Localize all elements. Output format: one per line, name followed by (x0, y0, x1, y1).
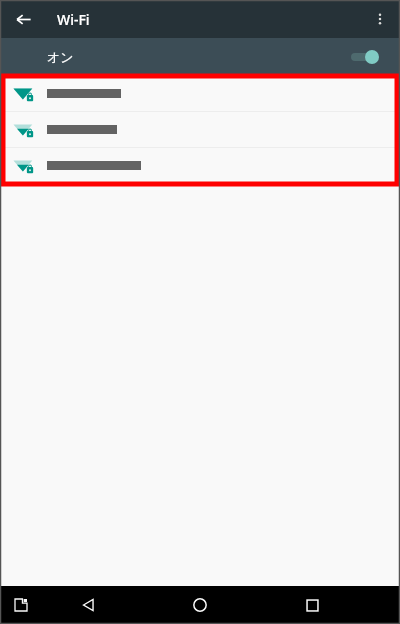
button[interactable]: Recent apps (288, 586, 336, 624)
button[interactable] (0, 148, 400, 183)
button[interactable]: Switch input method (8, 592, 34, 618)
button[interactable]: Back (64, 586, 112, 624)
button[interactable]: Home (176, 586, 224, 624)
button[interactable] (0, 112, 400, 147)
button[interactable]: More options (365, 4, 395, 34)
staticText: オン (47, 49, 74, 65)
button[interactable] (0, 76, 400, 111)
staticText: Wi-Fi (57, 10, 90, 29)
button[interactable]: Back (8, 4, 38, 34)
button[interactable]: オン (0, 38, 400, 76)
